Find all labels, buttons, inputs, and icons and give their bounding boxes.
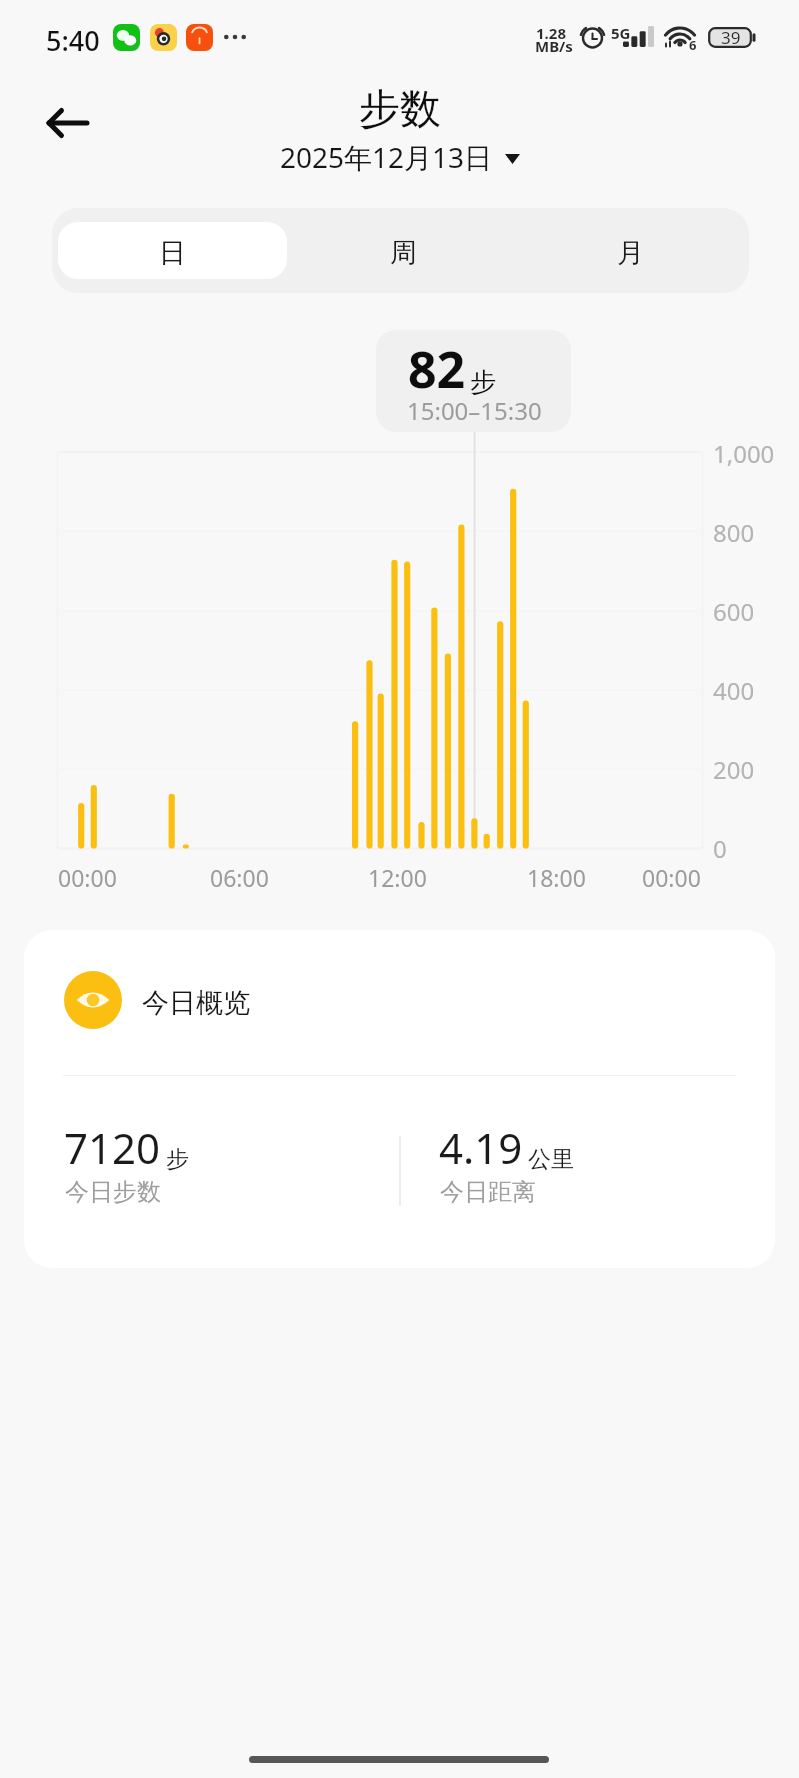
staticText: 今日距离 [440, 1177, 536, 1207]
staticText: 600 [713, 595, 755, 628]
staticText: 18:00 [527, 862, 586, 893]
staticText: 月 [617, 236, 644, 270]
staticText: 5G [611, 23, 631, 43]
staticText: MB/s [535, 36, 573, 56]
staticText: 39 [721, 26, 741, 49]
staticText: 今日步数 [65, 1177, 161, 1207]
button[interactable]: 月 [517, 222, 743, 279]
staticText: 2025年12月13日 [280, 138, 493, 176]
staticText: 00:00 [642, 862, 701, 893]
staticText: 1,000 [713, 437, 775, 470]
staticText: 7120 [64, 1119, 161, 1176]
staticText: 公里 [528, 1145, 574, 1174]
staticText: 1.28 [536, 23, 566, 43]
button[interactable]: Step chart [57, 452, 703, 849]
button[interactable]: Back [38, 93, 98, 153]
staticText: 200 [713, 753, 755, 786]
button[interactable]: 日 [58, 222, 287, 279]
staticText: 步数 [359, 84, 441, 136]
staticText: 日 [159, 236, 186, 270]
staticText: 06:00 [210, 862, 269, 893]
staticText: 82 [408, 335, 466, 403]
staticText: 步 [166, 1145, 189, 1174]
staticText: 4.19 [439, 1119, 523, 1176]
staticText: 00:00 [58, 862, 117, 893]
button[interactable]: 今日概览 [24, 930, 775, 1268]
staticText: 5:40 [46, 22, 100, 59]
staticText: 0 [713, 832, 727, 865]
staticText: 周 [390, 236, 417, 270]
staticText: 今日概览 [142, 986, 250, 1020]
button[interactable]: Change date [274, 136, 526, 178]
staticText: 6 [689, 36, 697, 54]
button[interactable]: 周 [289, 222, 517, 279]
staticText: 400 [713, 674, 755, 707]
staticText: 800 [713, 516, 755, 549]
staticText: 步 [470, 366, 496, 399]
staticText: 15:00–15:30 [407, 394, 542, 427]
staticText: 12:00 [368, 862, 427, 893]
